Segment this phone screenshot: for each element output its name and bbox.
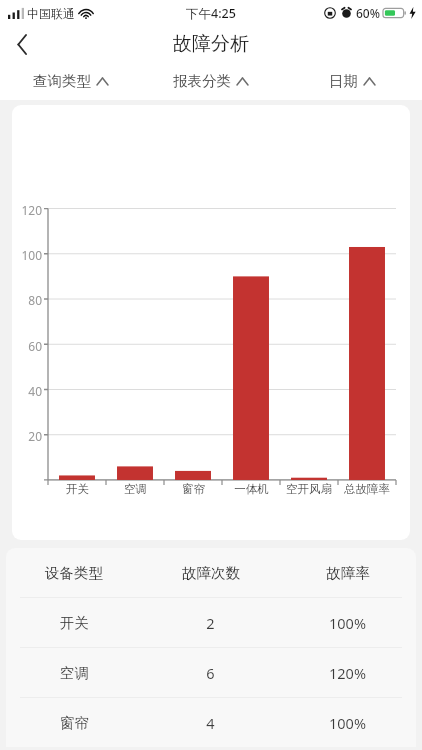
staticText: 开关 <box>66 482 89 496</box>
staticText: 设备类型 <box>45 564 103 582</box>
staticText: 20 <box>12 428 42 444</box>
staticText: 日期 <box>329 72 358 90</box>
staticText: 故障次数 <box>182 564 240 582</box>
staticText: 80 <box>12 292 42 308</box>
staticText: 120% <box>329 663 366 683</box>
button[interactable]: 查询类型 <box>0 62 140 100</box>
button[interactable]: 设备类型 <box>6 548 416 597</box>
staticText: 4 <box>206 713 215 733</box>
button[interactable]: 日期 <box>281 62 422 100</box>
staticText: 空开风扇 <box>286 482 332 496</box>
staticText: 总故障率 <box>344 482 390 496</box>
staticText: 100 <box>12 247 42 263</box>
staticText: 查询类型 <box>33 72 91 90</box>
staticText: 窗帘 <box>182 482 205 496</box>
staticText: 开关 <box>60 614 89 632</box>
staticText: 60% <box>356 5 380 21</box>
staticText: 100% <box>329 613 366 633</box>
staticText: 中国联通 <box>27 6 75 21</box>
staticText: 60 <box>12 338 42 354</box>
staticText: 一体机 <box>234 482 269 496</box>
button[interactable]: 窗帘 <box>6 698 416 747</box>
staticText: 空调 <box>124 482 147 496</box>
staticText: 120 <box>12 202 42 218</box>
staticText: 报表分类 <box>173 72 231 90</box>
button[interactable]: 空调 <box>6 648 416 697</box>
staticText: 空调 <box>60 664 89 682</box>
staticText: 40 <box>12 383 42 399</box>
staticText: 故障率 <box>326 564 370 582</box>
button[interactable]: 报表分类 <box>140 62 281 100</box>
staticText: 6 <box>206 663 215 683</box>
staticText: 下午4:25 <box>186 5 236 22</box>
staticText: 故障分析 <box>173 32 249 56</box>
button[interactable]: 开关 <box>6 598 416 647</box>
button[interactable]: 返回 <box>0 26 44 62</box>
staticText: 100% <box>329 713 366 733</box>
staticText: 窗帘 <box>60 714 89 732</box>
staticText: 2 <box>206 613 215 633</box>
